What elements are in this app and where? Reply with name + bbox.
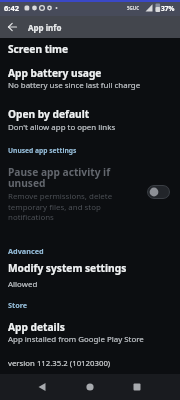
button[interactable]: [123, 376, 151, 398]
button[interactable]: [0, 257, 180, 293]
button[interactable]: [4, 19, 20, 35]
staticText: No battery use since last full charge: [8, 80, 141, 91]
staticText: Don't allow app to open links: [8, 122, 116, 133]
button[interactable]: [0, 160, 180, 225]
button[interactable]: [28, 376, 56, 398]
staticText: Unused app settings: [8, 146, 77, 155]
button[interactable]: [0, 62, 180, 95]
staticText: 6:42: [4, 3, 19, 13]
staticText: App details: [8, 320, 65, 334]
staticText: App installed from Google Play Store: [8, 334, 144, 345]
staticText: Store: [8, 300, 28, 310]
staticText: Remove permissions, delete temporary fil…: [8, 191, 113, 222]
button[interactable]: [147, 185, 170, 199]
staticText: Screen time: [8, 42, 69, 56]
staticText: Advanced: [8, 246, 44, 256]
button[interactable]: [0, 103, 180, 137]
button[interactable]: [0, 314, 180, 348]
staticText: version 112.35.2 (10120300): [8, 358, 111, 369]
button[interactable]: [0, 38, 180, 60]
staticText: App info: [28, 22, 62, 33]
staticText: App battery usage: [8, 66, 102, 80]
staticText: 5GUC: [127, 5, 140, 11]
staticText: Pause app activity if unused: [8, 165, 111, 190]
staticText: Open by default: [8, 107, 90, 121]
staticText: Allowed: [8, 279, 38, 290]
staticText: 37%: [161, 4, 175, 13]
button[interactable]: [76, 376, 104, 398]
staticText: Modify system settings: [8, 261, 127, 275]
